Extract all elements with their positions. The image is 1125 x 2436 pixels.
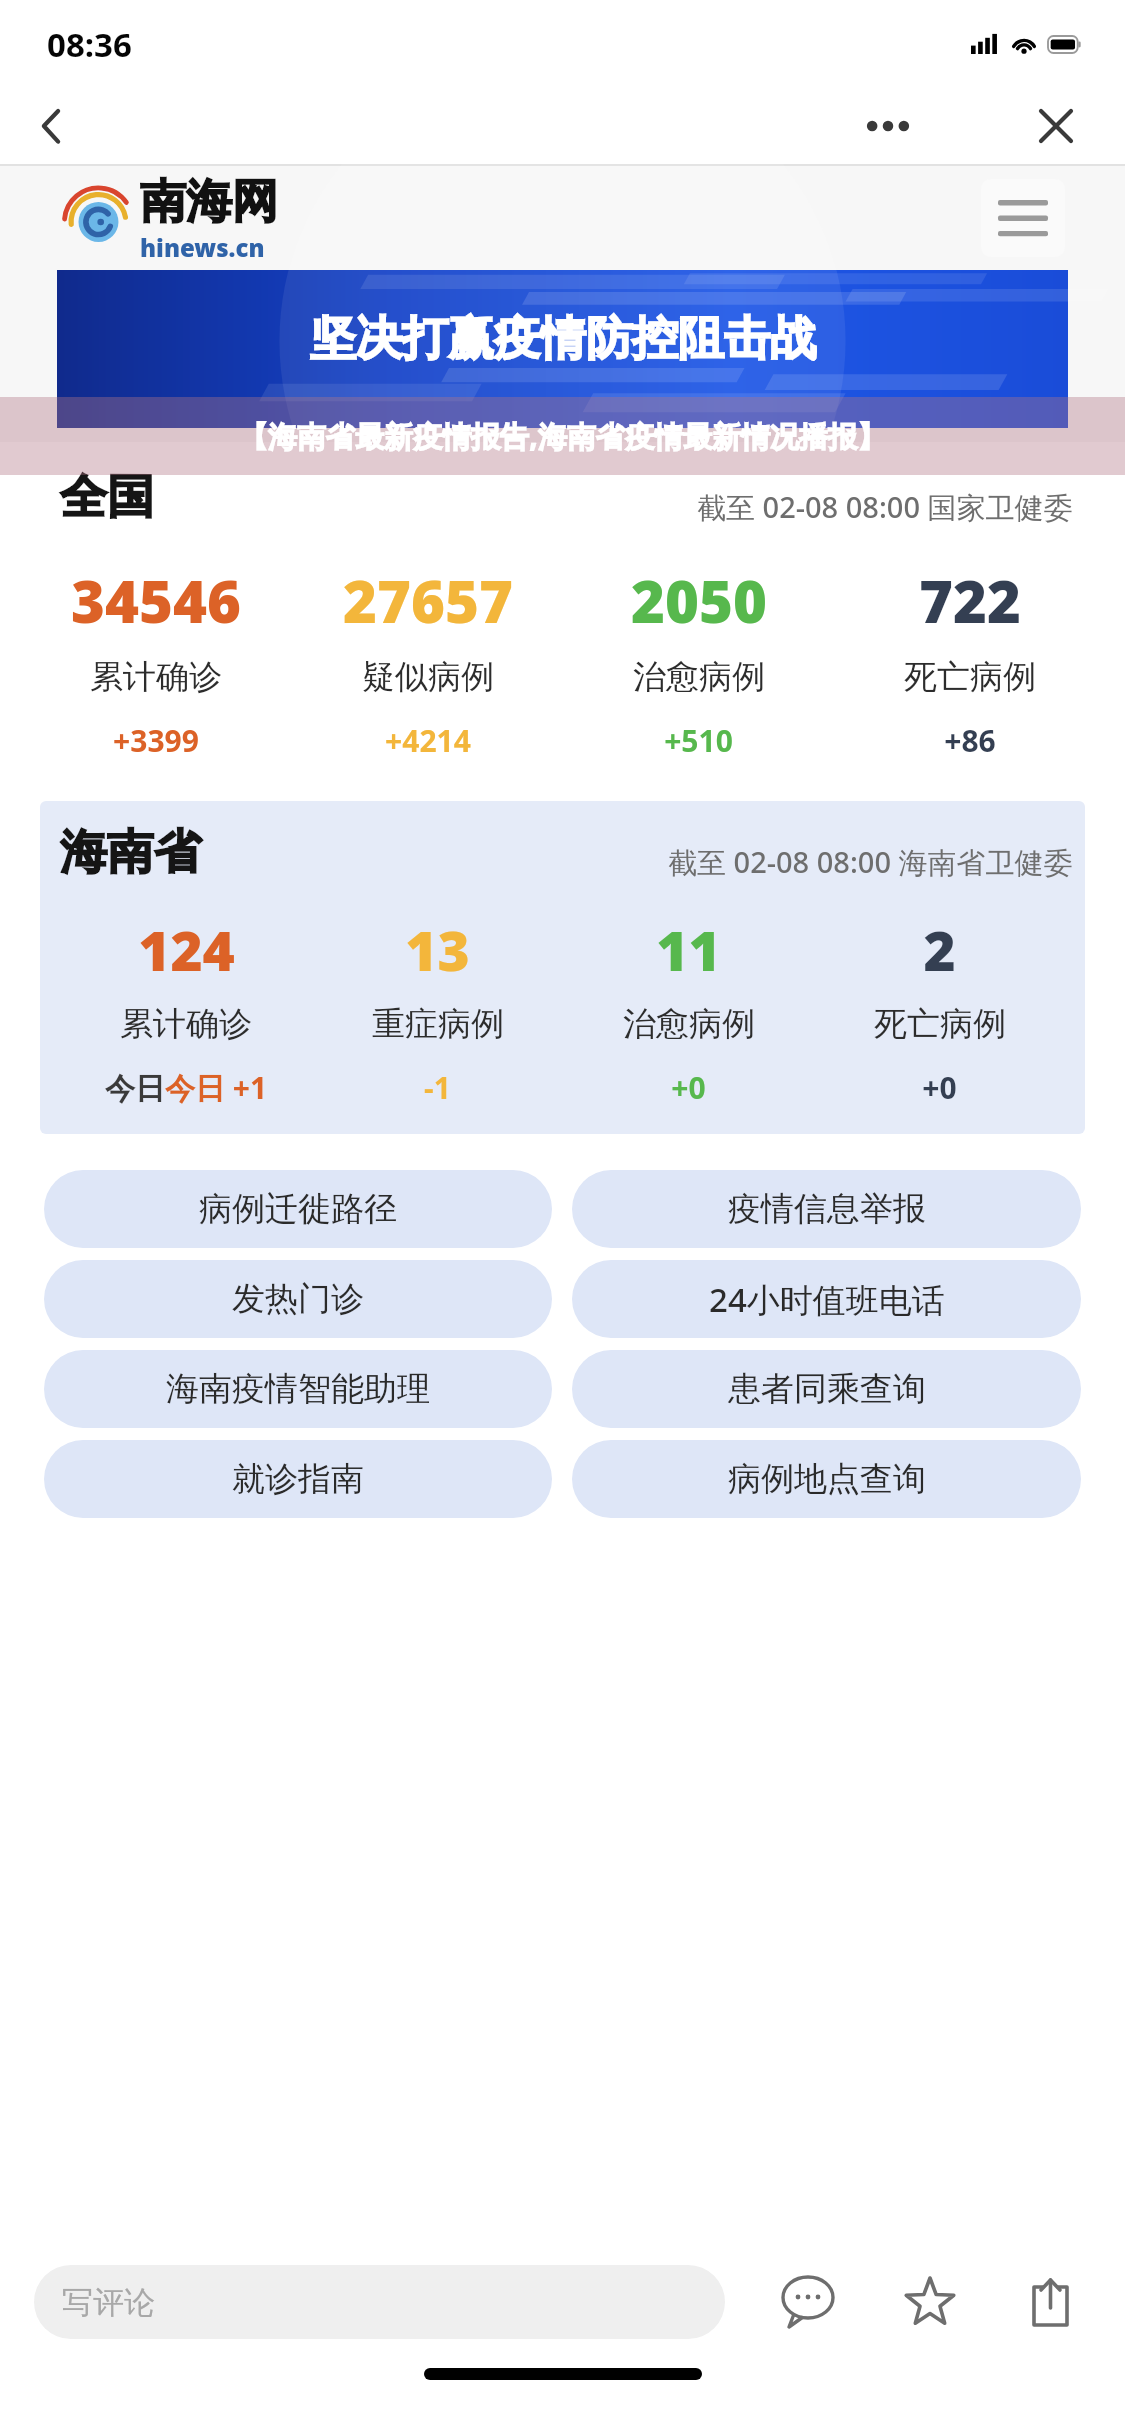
button[interactable]: 发热门诊 (44, 1260, 552, 1338)
staticText: 累计确诊 (90, 656, 222, 698)
staticText: +4214 (385, 720, 471, 761)
staticText: 全国 (60, 468, 154, 527)
staticText: 疑似病例 (362, 656, 494, 698)
button[interactable]: 病例地点查询 (572, 1440, 1081, 1518)
staticText: 截至 02-08 08:00 海南省卫健委 (668, 842, 1073, 882)
button[interactable]: 病例迁徙路径 (44, 1170, 552, 1248)
staticText: 坚决打赢疫情防控阻击战 (310, 310, 816, 368)
button[interactable]: 就诊指南 (44, 1440, 552, 1518)
button[interactable]: 24小时值班电话 (572, 1260, 1081, 1338)
button[interactable]: Back (22, 96, 82, 156)
staticText: 病例地点查询 (728, 1458, 926, 1500)
staticText: 死亡病例 (904, 656, 1036, 698)
staticText: 截至 02-08 08:00 国家卫健委 (697, 487, 1073, 527)
button[interactable]: Close (1025, 95, 1087, 157)
staticText: 治愈病例 (623, 1003, 755, 1045)
staticText: +0 (922, 1067, 957, 1108)
button[interactable]: 写评论 (34, 2265, 725, 2339)
staticText: 南海网 (140, 173, 278, 231)
staticText: +510 (664, 720, 733, 761)
staticText: 34546 (71, 561, 241, 640)
staticText: 24小时值班电话 (709, 1277, 945, 1322)
staticText: 2 (923, 912, 956, 987)
button[interactable]: Comments (769, 2263, 847, 2341)
button[interactable]: 海南疫情智能助理 (44, 1350, 552, 1428)
staticText: 死亡病例 (874, 1003, 1006, 1045)
staticText: +86 (944, 720, 996, 761)
staticText: 治愈病例 (633, 656, 765, 698)
button[interactable]: 患者同乘查询 (572, 1350, 1081, 1428)
button[interactable]: More options (857, 95, 919, 157)
staticText: 写评论 (62, 2283, 155, 2322)
staticText: 11 (656, 912, 721, 987)
staticText: 累计确诊 (120, 1003, 252, 1045)
button[interactable]: 疫情信息举报 (572, 1170, 1081, 1248)
button[interactable]: Share (1013, 2263, 1091, 2341)
staticText: 2050 (631, 561, 767, 640)
staticText: 08:36 (47, 22, 132, 67)
staticText: -1 (424, 1067, 451, 1108)
staticText: 今日今日 +1 (105, 1067, 268, 1108)
staticText: 患者同乘查询 (728, 1368, 926, 1410)
staticText: hinews.cn (140, 231, 265, 264)
staticText: +0 (671, 1067, 706, 1108)
staticText: 722 (919, 561, 1021, 640)
staticText: +3399 (113, 720, 199, 761)
button[interactable]: Favorite (891, 2263, 969, 2341)
staticText: 重症病例 (372, 1003, 504, 1045)
staticText: 124 (138, 912, 235, 987)
staticText: 病例迁徙路径 (199, 1188, 397, 1230)
staticText: 海南省 (60, 823, 201, 882)
staticText: 【海南省最新疫情报告,海南省疫情最新情况播报】 (239, 416, 886, 456)
staticText: 13 (405, 912, 470, 987)
staticText: 就诊指南 (232, 1458, 364, 1500)
staticText: 发热门诊 (232, 1278, 364, 1320)
staticText: 海南疫情智能助理 (166, 1368, 430, 1410)
staticText: 疫情信息举报 (728, 1188, 926, 1230)
button[interactable]: Menu (981, 179, 1065, 257)
staticText: 27657 (343, 561, 513, 640)
